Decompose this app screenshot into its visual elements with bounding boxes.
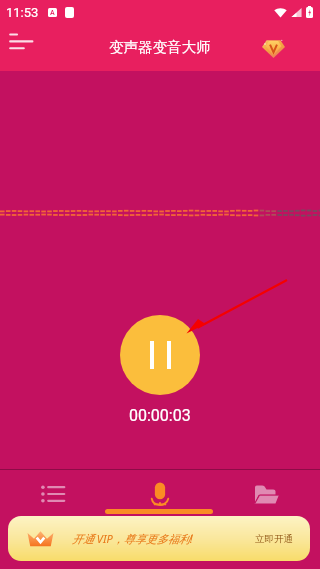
button[interactable]: Effects list: [0, 470, 106, 516]
staticText: 变声器变音大师: [109, 38, 211, 56]
button[interactable]: Pause recording: [120, 315, 200, 395]
button[interactable]: Files: [213, 470, 320, 516]
staticText: 11:53: [6, 5, 39, 20]
button[interactable]: 开通 VIP，尊享更多福利!: [8, 516, 310, 561]
staticText: A: [50, 9, 55, 17]
staticText: 00:00:03: [129, 406, 191, 425]
staticText: 开通 VIP，尊享更多福利!: [72, 531, 193, 546]
button[interactable]: VIP: [258, 30, 289, 65]
button[interactable]: Menu: [0, 24, 40, 71]
button[interactable]: Record: [106, 470, 213, 516]
staticText: 立即开通: [255, 533, 293, 545]
